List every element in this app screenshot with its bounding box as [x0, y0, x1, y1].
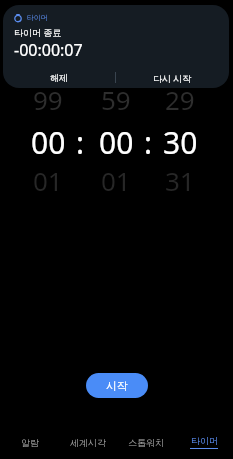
staticText: 31 [165, 163, 195, 193]
other: Timer [14, 14, 22, 22]
staticText: 59 [101, 82, 131, 112]
button[interactable]: 59 [92, 82, 140, 112]
button[interactable]: 다시 시작 [116, 67, 229, 88]
staticText: 01 [33, 163, 63, 193]
button[interactable]: 01 [24, 163, 72, 193]
button[interactable]: 알람 [0, 425, 59, 459]
button[interactable]: Timer [3, 5, 229, 88]
button[interactable]: 타이머 [175, 425, 233, 459]
staticText: 세계시각 [70, 437, 106, 448]
button[interactable]: 00 [92, 122, 140, 156]
button[interactable]: 스톱워치 [117, 425, 175, 459]
staticText: 99 [33, 82, 63, 112]
staticText: 해제 [50, 72, 68, 83]
button[interactable]: 99 [24, 82, 72, 112]
staticText: : [76, 122, 85, 156]
button[interactable]: 시작 [86, 373, 148, 398]
staticText: 00 [31, 122, 66, 156]
staticText: 타이머 종료 [14, 26, 62, 38]
staticText: 타이머 [27, 13, 48, 22]
staticText: 29 [165, 82, 195, 112]
button[interactable]: 29 [156, 82, 204, 112]
staticText: 01 [101, 163, 131, 193]
button[interactable]: 00 [24, 122, 72, 156]
staticText: -00:00:07 [14, 39, 83, 61]
staticText: 스톱워치 [128, 437, 164, 448]
staticText: : [144, 122, 153, 156]
staticText: 시작 [106, 379, 128, 393]
button[interactable]: 세계시각 [59, 425, 117, 459]
button[interactable]: 해제 [3, 67, 115, 88]
button[interactable]: 01 [92, 163, 140, 193]
staticText: 다시 시작 [153, 72, 192, 84]
staticText: 00 [99, 122, 134, 156]
staticText: 타이머 [191, 435, 218, 446]
button[interactable]: 31 [156, 163, 204, 193]
staticText: 알람 [21, 437, 39, 448]
button[interactable]: 30 [156, 122, 204, 156]
staticText: 30 [163, 122, 198, 156]
